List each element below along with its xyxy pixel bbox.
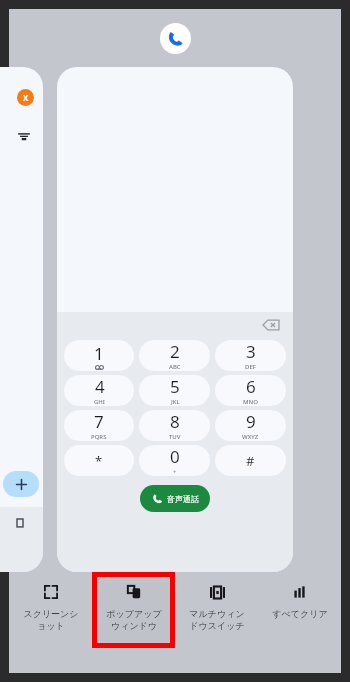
staticText: MNO xyxy=(243,398,258,406)
button[interactable]: 9 xyxy=(215,410,286,441)
staticText: GHI xyxy=(94,398,105,406)
staticText: JKL xyxy=(171,398,180,406)
button[interactable]: 5 xyxy=(139,375,210,406)
staticText: 7 xyxy=(94,410,104,433)
button[interactable]: Backspace xyxy=(261,315,281,335)
button[interactable]: 音声通話 xyxy=(140,485,210,512)
staticText: 3 xyxy=(246,340,256,363)
staticText: 9 xyxy=(246,410,256,433)
button[interactable]: マルチウィン ドウスイッチ xyxy=(189,583,245,632)
staticText: 0 xyxy=(170,445,180,468)
staticText: * xyxy=(95,452,103,470)
button[interactable]: すべてクリア xyxy=(272,583,328,619)
staticText: TUV xyxy=(169,433,181,441)
button[interactable]: * xyxy=(64,445,134,476)
staticText: PQRS xyxy=(91,433,107,441)
button[interactable]: 6 xyxy=(215,375,286,406)
button[interactable]: 8 xyxy=(139,410,210,441)
staticText: ポップアップ ウィンドウ xyxy=(106,608,162,632)
staticText: 1 xyxy=(94,342,104,365)
button[interactable]: 1 xyxy=(64,340,134,371)
staticText: 2 xyxy=(170,340,180,363)
staticText: X xyxy=(23,92,29,103)
staticText: スクリーンシ ョット xyxy=(23,608,79,632)
button[interactable]: ポップアップ ウィンドウ xyxy=(106,583,162,632)
button[interactable]: # xyxy=(215,445,286,476)
button[interactable]: Phone app xyxy=(160,23,191,54)
button[interactable]: Previous app xyxy=(0,67,43,572)
staticText: 音声通話 xyxy=(167,494,199,504)
button[interactable]: 2 xyxy=(139,340,210,371)
button[interactable]: スクリーンシ ョット xyxy=(23,583,79,632)
staticText: 8 xyxy=(170,410,180,433)
staticText: DEF xyxy=(245,363,256,371)
button[interactable]: 0 xyxy=(139,445,210,476)
staticText: 6 xyxy=(246,375,256,398)
staticText: # xyxy=(246,452,255,470)
staticText: ABC xyxy=(169,363,181,371)
staticText: + xyxy=(173,468,177,476)
staticText: すべてクリア xyxy=(272,608,328,619)
staticText: 4 xyxy=(95,375,105,398)
staticText: WXYZ xyxy=(242,433,259,441)
staticText: マルチウィン ドウスイッチ xyxy=(189,608,245,632)
button[interactable]: 7 xyxy=(64,410,134,441)
button[interactable]: 3 xyxy=(215,340,286,371)
button[interactable]: 4 xyxy=(64,375,134,406)
staticText: 5 xyxy=(170,375,180,398)
